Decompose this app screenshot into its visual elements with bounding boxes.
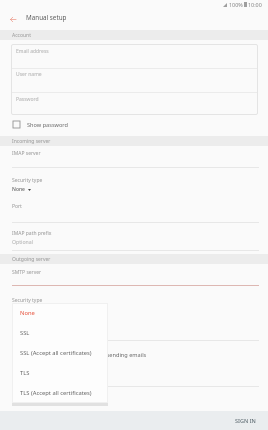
staticText: IMAP server [12,150,41,157]
button[interactable]: Require sign-in before sending emails [0,348,268,361]
staticText: SIGN IN [235,417,256,424]
staticText: Security type [12,177,43,184]
staticText: SMTP server [12,269,42,276]
button[interactable]: User name [11,69,258,92]
staticText: Email address [16,48,49,55]
staticText: TLS (Accept all certificates) [20,389,92,397]
staticText: None [20,309,35,317]
staticText: 10:00 [248,1,262,8]
button[interactable]: Back [0,12,26,26]
button[interactable]: Email address [11,44,258,68]
staticText: Require sign-in before sending emails [47,351,147,359]
button[interactable]: TLS (Accept all certificates) [12,383,108,403]
button[interactable]: TLS [12,363,108,383]
staticText: Port [12,203,22,210]
staticText: None [12,186,25,193]
staticText: IMAP path prefix [12,230,52,237]
staticText: Account [12,32,32,39]
staticText: Show password [27,121,69,129]
staticText: SSL [20,329,30,337]
button[interactable]: None [12,303,108,323]
staticText: TLS [20,369,30,377]
button[interactable]: SSL (Accept all certificates) [12,343,108,363]
button[interactable]: SIGN IN [222,413,268,428]
staticText: 100% [229,1,243,8]
button[interactable]: SSL [12,323,108,343]
staticText: SSL (Accept all certificates) [20,349,92,357]
staticText: Optional [12,238,34,245]
button[interactable]: Show password [0,118,268,131]
staticText: Password [16,96,39,103]
staticText: Security type [12,297,43,304]
staticText: Outgoing server [12,256,51,263]
staticText: Incoming server [12,138,51,145]
staticText: Manual setup [26,13,67,22]
button[interactable]: Password [11,93,258,115]
staticText: User name [16,71,42,78]
button[interactable]: None [12,186,31,193]
